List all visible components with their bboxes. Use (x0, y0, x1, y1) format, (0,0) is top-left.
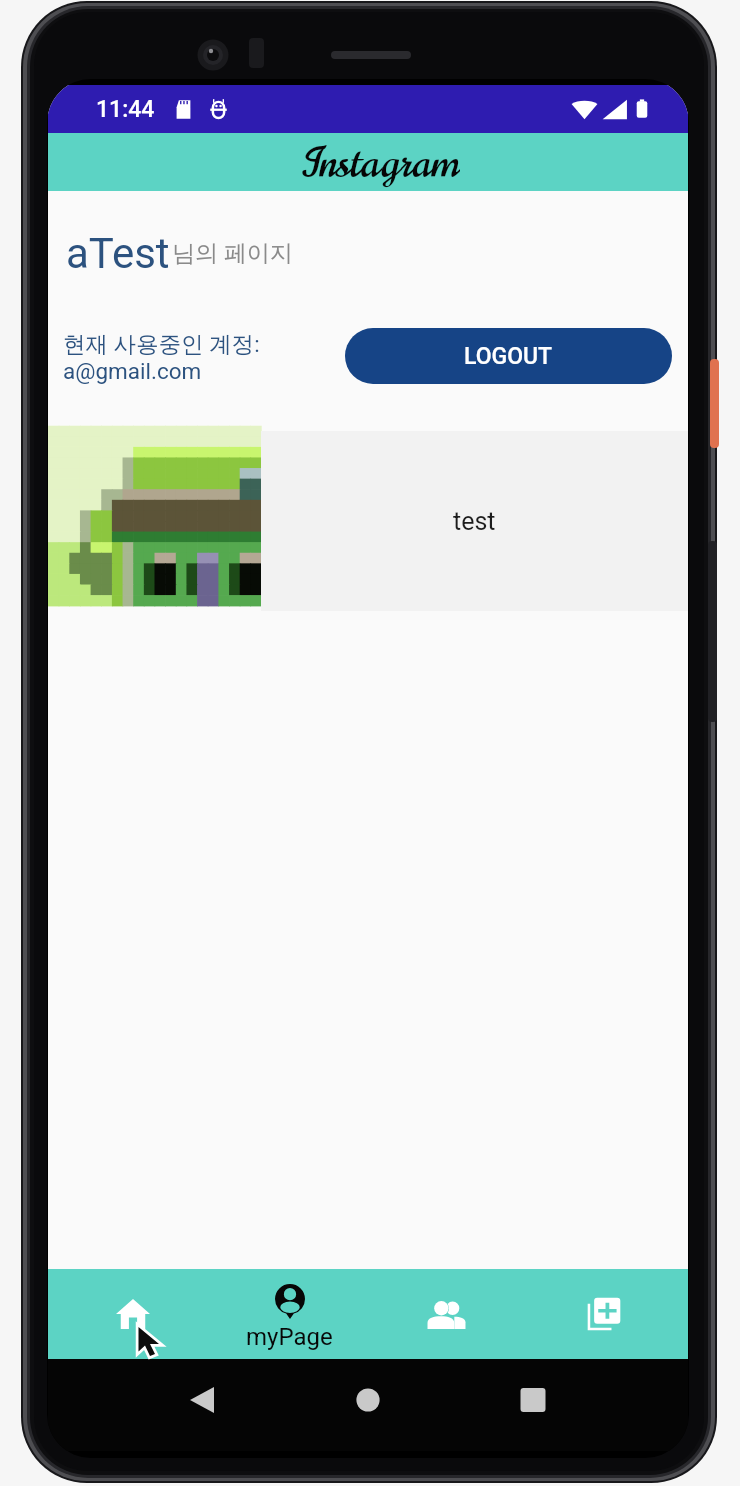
button[interactable]: LOGOUT (345, 328, 672, 384)
staticText: LOGOUT (464, 343, 553, 370)
button[interactable]: Home (54, 1269, 211, 1359)
button[interactable]: Friends (368, 1269, 525, 1359)
button[interactable]: myPage (211, 1269, 368, 1359)
staticText: aTest (66, 229, 170, 278)
staticText: 11:44 (96, 96, 155, 123)
staticText: 님의 페이지 (172, 239, 293, 268)
staticText: myPage (246, 1323, 333, 1351)
button[interactable]: Add post (525, 1269, 682, 1359)
staticText: a@gmail.com (63, 358, 202, 384)
staticText: 현재 사용중인 계정: (63, 330, 260, 358)
staticText: test (453, 507, 496, 536)
staticText: Instagram (298, 133, 460, 191)
button[interactable]: test (48, 431, 688, 611)
